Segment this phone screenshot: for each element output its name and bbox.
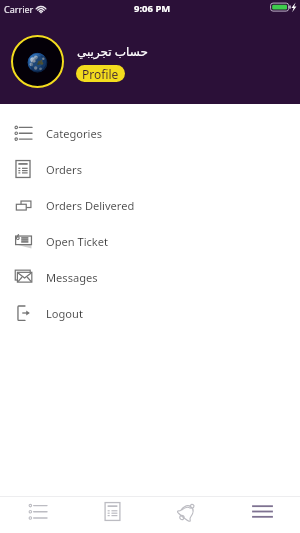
button[interactable]: Logout (0, 295, 300, 331)
button[interactable]: Orders (75, 497, 150, 533)
button[interactable]: Notifications (150, 497, 225, 533)
staticText: Orders (46, 162, 82, 177)
button[interactable]: Orders Delivered (0, 187, 300, 223)
button[interactable]: Profile (76, 65, 125, 82)
staticText: Open Ticket (46, 234, 109, 249)
staticText: Categories (46, 126, 103, 141)
staticText: Logout (46, 306, 83, 321)
staticText: Orders Delivered (46, 198, 135, 213)
staticText: Messages (46, 270, 98, 285)
button[interactable]: Open Ticket (0, 223, 300, 259)
button[interactable]: Messages (0, 259, 300, 295)
staticText: حساب تجريبي (77, 43, 148, 59)
button[interactable]: Menu (225, 497, 300, 533)
staticText: 9:06 PM (134, 2, 171, 15)
staticText: Carrier (4, 3, 34, 15)
staticText: Profile (82, 66, 119, 82)
button[interactable]: Categories (0, 497, 75, 533)
button[interactable]: Categories (0, 115, 300, 151)
button[interactable]: Orders (0, 151, 300, 187)
